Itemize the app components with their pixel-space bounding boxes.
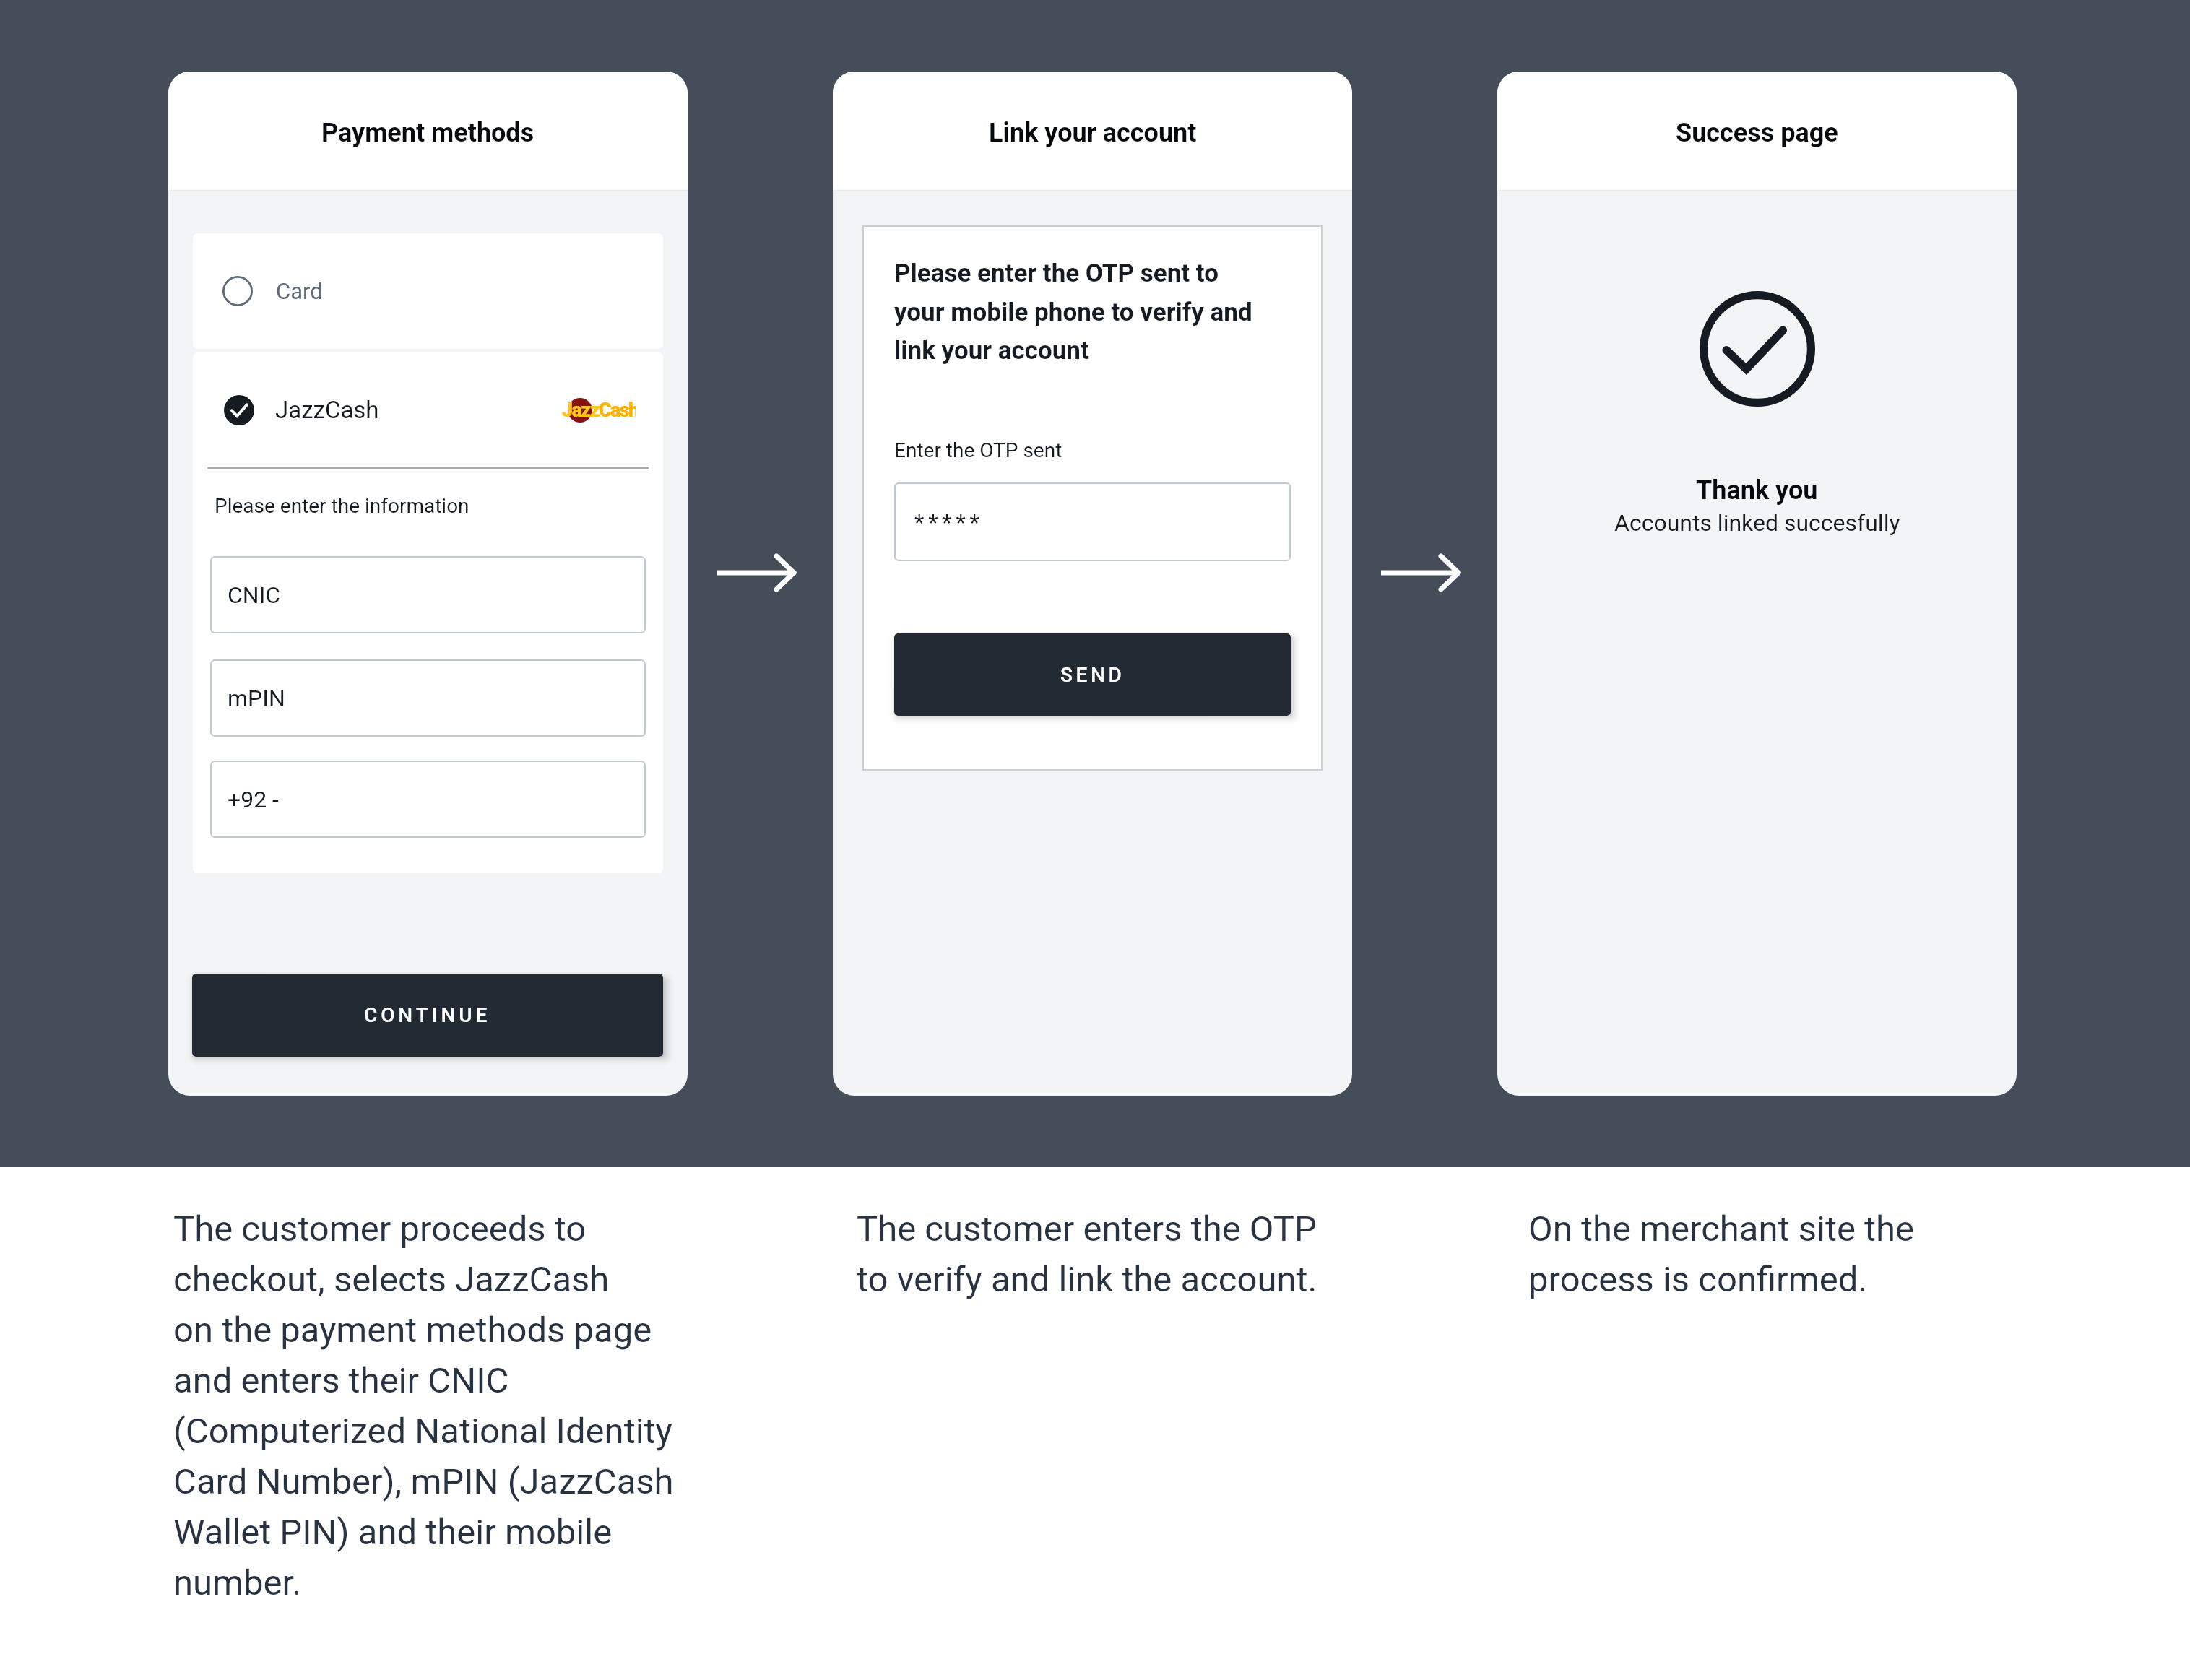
- staticText: Thank you: [1696, 475, 1818, 506]
- staticText: *****: [914, 509, 984, 535]
- staticText: mPIN: [228, 685, 285, 712]
- staticText: JazzCash: [275, 396, 379, 424]
- staticText: Accounts linked succesfully: [1614, 509, 1900, 537]
- button[interactable]: Select Card payment method: [193, 233, 663, 349]
- button[interactable]: SEND: [894, 633, 1291, 716]
- button[interactable]: OTP input field: [894, 482, 1291, 561]
- staticText: Link your account: [989, 118, 1197, 148]
- staticText: CONTINUE: [364, 1003, 491, 1027]
- staticText: The customer proceeds to checkout, selec…: [173, 1208, 674, 1603]
- staticText: Cash: [599, 399, 636, 422]
- staticText: Card: [276, 278, 323, 304]
- staticText: CNIC: [228, 581, 281, 609]
- staticText: Success page: [1676, 118, 1838, 148]
- staticText: Please enter the OTP sent to your mobile…: [894, 259, 1252, 365]
- other: Next step: [1381, 556, 1460, 589]
- staticText: Please enter the information: [215, 494, 469, 518]
- button[interactable]: mPIN: [210, 659, 646, 737]
- other: Next step: [717, 556, 796, 589]
- staticText: +92 -: [228, 786, 279, 813]
- staticText: Jazz: [562, 399, 599, 422]
- staticText: SEND: [1060, 663, 1125, 687]
- button[interactable]: JazzCash payment method, selected: [193, 352, 663, 467]
- staticText: Enter the OTP sent: [894, 438, 1062, 462]
- staticText: Payment methods: [321, 118, 534, 148]
- button[interactable]: CNIC: [210, 556, 646, 633]
- button[interactable]: CONTINUE: [192, 974, 663, 1057]
- staticText: The customer enters the OTP to verify an…: [857, 1208, 1317, 1300]
- staticText: On the merchant site the process is conf…: [1528, 1208, 1915, 1300]
- button[interactable]: +92 -: [210, 761, 646, 838]
